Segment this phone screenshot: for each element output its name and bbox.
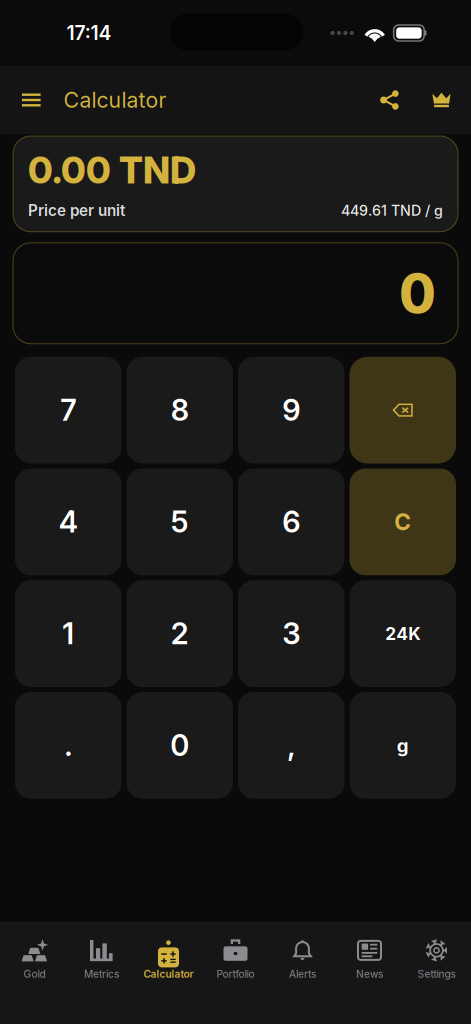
staticText: News <box>356 968 383 980</box>
button[interactable]: Premium <box>416 73 471 126</box>
staticText: 9 <box>282 392 300 428</box>
staticText: 3 <box>282 616 300 651</box>
staticText: Settings <box>417 968 455 980</box>
staticText: C <box>394 508 411 536</box>
button[interactable]: Menu <box>0 73 64 126</box>
button[interactable]: 7 <box>15 357 121 464</box>
button[interactable]: 8 <box>126 357 233 464</box>
staticText: Calculator <box>143 968 193 980</box>
button[interactable]: 2 <box>126 580 233 687</box>
button[interactable]: 9 <box>238 357 344 464</box>
button[interactable]: g <box>349 692 456 799</box>
staticText: 5 <box>171 504 189 540</box>
button[interactable]: 6 <box>238 468 344 575</box>
staticText: 0 <box>399 261 436 325</box>
button[interactable]: Share <box>363 73 416 126</box>
staticText: 2 <box>171 616 189 651</box>
staticText: , <box>287 728 295 763</box>
button[interactable]: . <box>15 692 121 799</box>
button[interactable]: , <box>238 692 344 799</box>
staticText: 8 <box>171 392 189 428</box>
button[interactable]: Metrics <box>68 925 135 1022</box>
button[interactable]: Portfolio <box>202 925 269 1022</box>
button[interactable]: 4 <box>15 468 121 575</box>
staticText: Alerts <box>289 968 316 980</box>
staticText: Portfolio <box>216 968 254 980</box>
button[interactable]: Calculator <box>135 925 202 1022</box>
button[interactable]: 5 <box>126 468 233 575</box>
button[interactable]: 3 <box>238 580 344 687</box>
staticText: 6 <box>282 504 300 540</box>
staticText: 0 <box>170 728 189 763</box>
staticText: 449.61 TND / g <box>341 202 443 219</box>
button[interactable]: Alerts <box>269 925 336 1022</box>
staticText: 17:14 <box>66 21 111 45</box>
staticText: 0.00 TND <box>28 148 196 192</box>
staticText: 4 <box>59 504 78 540</box>
button[interactable]: C <box>349 468 456 575</box>
staticText: Calculator <box>64 87 167 113</box>
button[interactable]: Delete <box>349 357 456 464</box>
button[interactable]: Calculator <box>64 69 167 131</box>
button[interactable]: News <box>336 925 403 1022</box>
staticText: Metrics <box>84 968 119 980</box>
staticText: 1 <box>62 616 74 651</box>
staticText: 7 <box>60 392 76 428</box>
staticText: Price per unit <box>28 201 125 220</box>
staticText: Gold <box>23 968 45 980</box>
button[interactable]: 24K <box>349 580 456 687</box>
button[interactable]: Gold <box>1 925 68 1022</box>
staticText: g <box>397 734 409 757</box>
button[interactable]: Settings <box>403 925 470 1022</box>
button[interactable]: 1 <box>15 580 121 687</box>
button[interactable]: 0 <box>126 692 233 799</box>
staticText: 24K <box>385 623 420 644</box>
staticText: . <box>64 728 72 763</box>
